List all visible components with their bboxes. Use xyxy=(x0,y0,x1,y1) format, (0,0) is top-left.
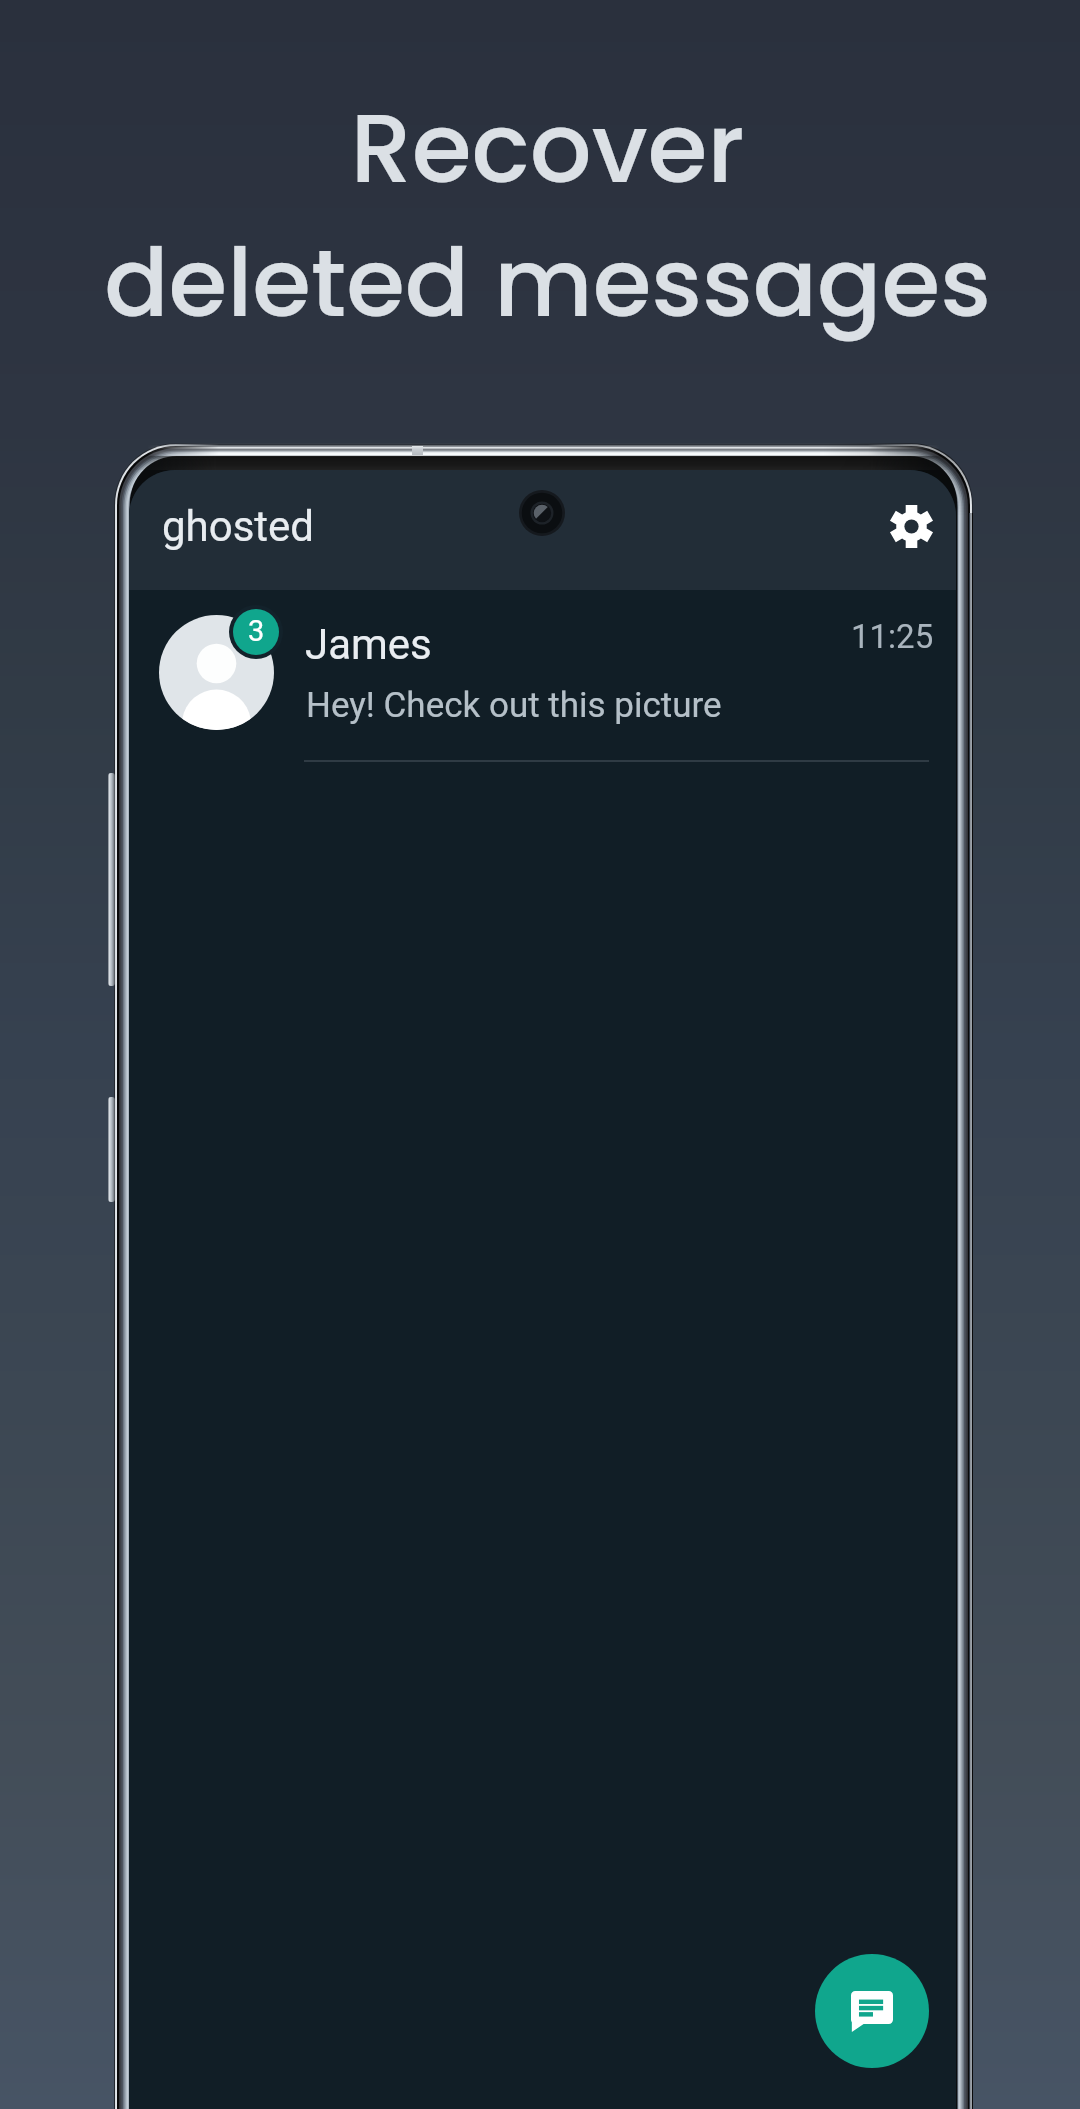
staticText: ghosted xyxy=(162,502,315,551)
button[interactable]: Settings xyxy=(873,488,949,564)
staticText: Hey! Check out this picture xyxy=(306,685,722,726)
button[interactable]: New message xyxy=(815,1954,929,2068)
staticText: 11:25 xyxy=(851,617,934,656)
staticText: 3 xyxy=(248,614,265,648)
staticText: Recover xyxy=(350,80,745,216)
staticText: deleted messages xyxy=(104,216,991,349)
button[interactable]: 3 xyxy=(129,470,956,790)
staticText: James xyxy=(305,620,432,669)
